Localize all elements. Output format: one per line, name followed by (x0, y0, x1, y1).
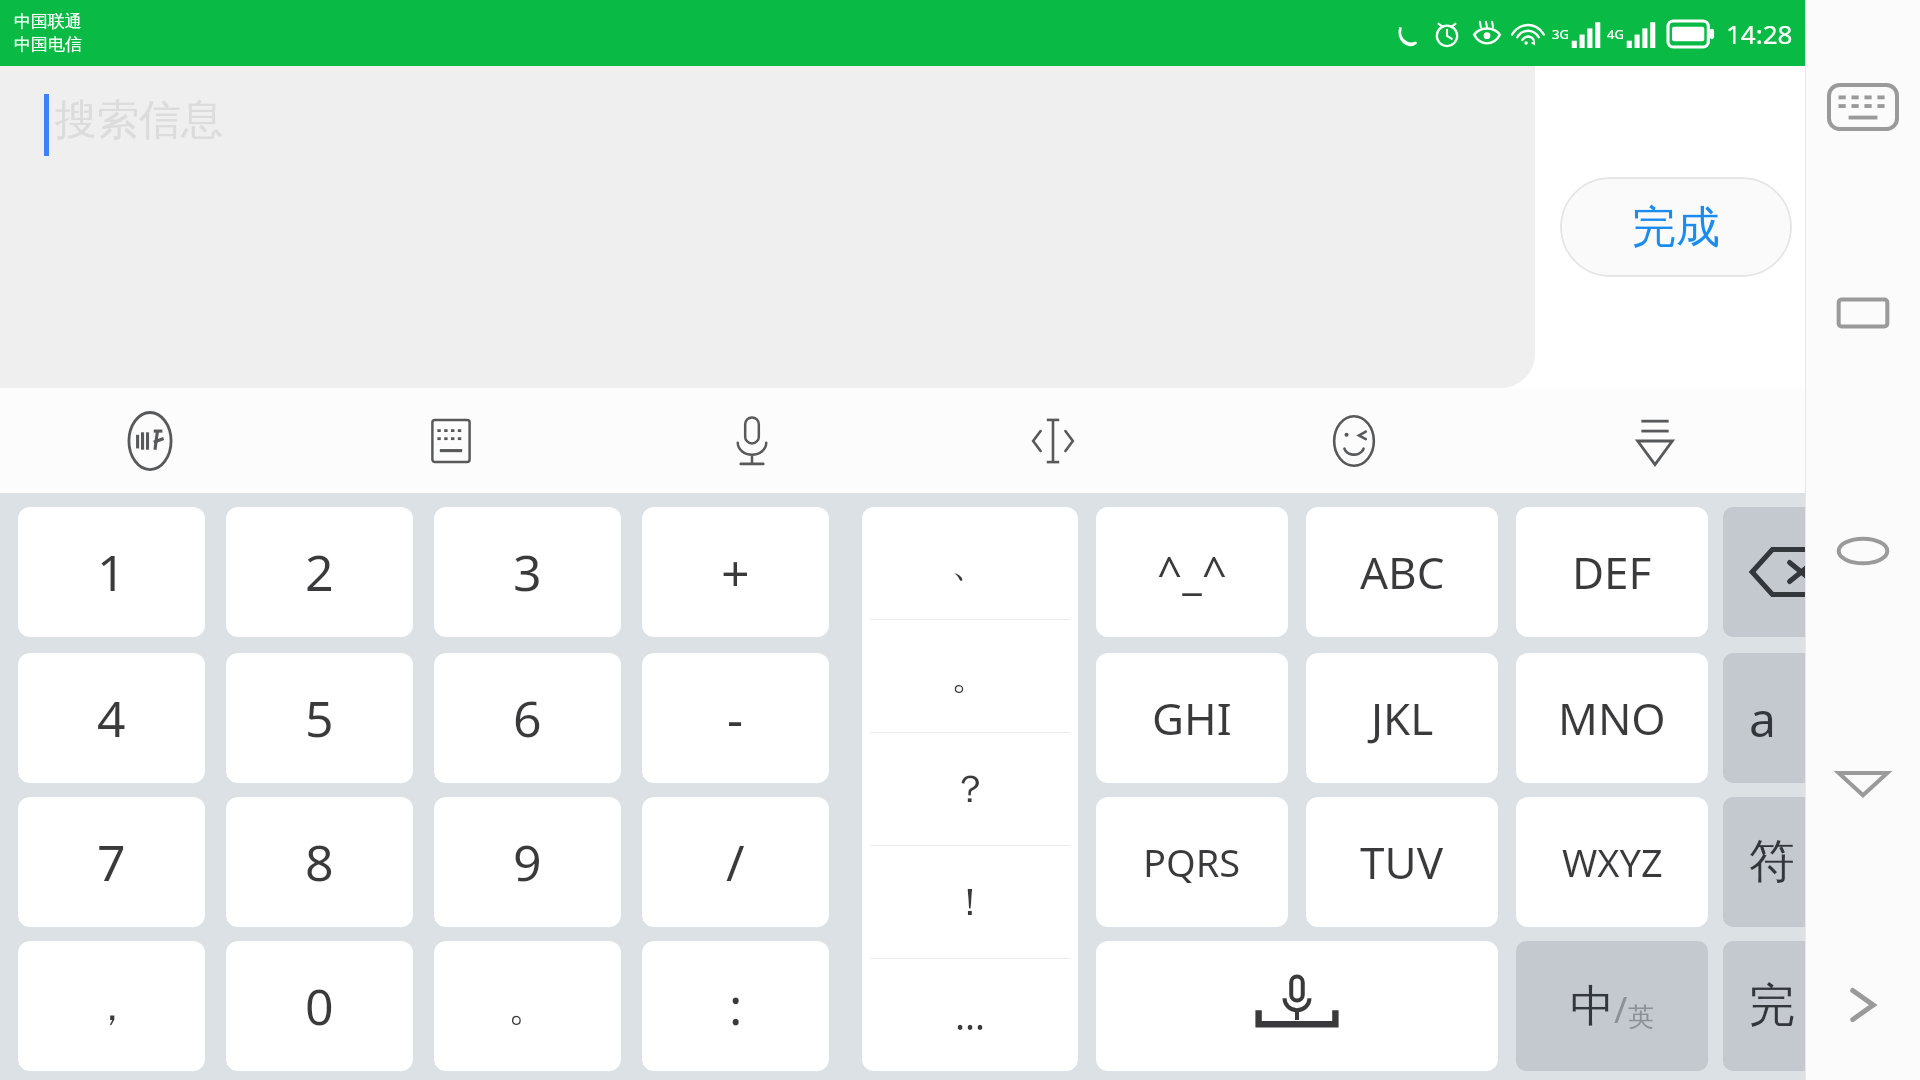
staticText: 7 (97, 828, 126, 896)
staticText: GHI (1152, 688, 1232, 748)
staticText: / (1614, 985, 1628, 1034)
staticText: + (721, 538, 750, 606)
staticText: TUV (1360, 832, 1444, 892)
staticText: 8 (305, 828, 334, 896)
staticText: 2 (305, 538, 334, 606)
button[interactable]: Symbols (1723, 797, 1915, 927)
staticText: 。 (951, 652, 989, 700)
staticText: 中国电信 (14, 34, 82, 55)
button[interactable]: Keyboard (1805, 62, 1920, 152)
button[interactable]: WXYZ (1516, 797, 1708, 927)
button[interactable]: 0 (226, 941, 413, 1071)
staticText: 0 (305, 972, 334, 1040)
button[interactable]: 搜索信息 (0, 66, 1535, 388)
staticText: JKL (1371, 688, 1434, 748)
staticText: 1 (97, 538, 126, 606)
button[interactable]: 4 (18, 653, 205, 783)
staticText: ABC (1360, 542, 1445, 602)
button[interactable]: Emoji (1203, 388, 1504, 493)
staticText: 完成 (1632, 200, 1720, 255)
staticText: WXYZ (1562, 836, 1663, 888)
staticText: 中国联通 (14, 11, 82, 32)
button[interactable]: Done (1723, 941, 1915, 1071)
staticText: / (726, 828, 745, 896)
button[interactable]: 6 (434, 653, 621, 783)
staticText: a (1749, 686, 1776, 751)
staticText: ？ (951, 765, 989, 813)
button[interactable]: ^_^ (1096, 507, 1288, 637)
button[interactable]: MNO (1516, 653, 1708, 783)
staticText: 英 (1628, 1001, 1654, 1034)
staticText: 完 (1749, 977, 1795, 1035)
staticText: 搜索信息 (55, 94, 223, 147)
button[interactable]: - (642, 653, 829, 783)
staticText: 4G (1607, 25, 1624, 43)
staticText: 符 (1749, 833, 1795, 891)
button[interactable]: 。 (434, 941, 621, 1071)
button[interactable]: Back (1805, 740, 1920, 826)
button[interactable]: ？ (862, 733, 1078, 845)
staticText: ！ (951, 878, 989, 926)
staticText: 6 (513, 684, 542, 752)
button[interactable]: 完成 (1560, 177, 1792, 277)
button[interactable]: Voice input (601, 388, 902, 493)
button[interactable]: 8 (226, 797, 413, 927)
button[interactable]: Home (1805, 508, 1920, 594)
staticText: … (955, 989, 986, 1041)
button[interactable]: + (642, 507, 829, 637)
button[interactable]: TUV (1306, 797, 1498, 927)
button[interactable]: DEF (1516, 507, 1708, 637)
button[interactable]: 7 (18, 797, 205, 927)
staticText: 4 (97, 684, 126, 752)
button[interactable]: 5 (226, 653, 413, 783)
button[interactable]: 中 (1516, 941, 1708, 1071)
button[interactable]: JKL (1306, 653, 1498, 783)
staticText: ^_^ (1157, 542, 1227, 602)
button[interactable]: 3 (434, 507, 621, 637)
button[interactable]: 9 (434, 797, 621, 927)
button[interactable]: / (642, 797, 829, 927)
button[interactable]: PQRS (1096, 797, 1288, 927)
staticText: ， (92, 981, 132, 1031)
button[interactable]: Backspace (1723, 507, 1915, 637)
button[interactable]: Hide keyboard (1504, 388, 1805, 493)
button[interactable]: 、 (862, 507, 1078, 619)
button[interactable]: … (862, 959, 1078, 1071)
button[interactable]: Switch to letters (1723, 653, 1915, 783)
button[interactable]: 1 (18, 507, 205, 637)
button[interactable]: Input method (0, 388, 300, 493)
staticText: 中 (1570, 979, 1614, 1034)
button[interactable]: 2 (226, 507, 413, 637)
button[interactable]: Keyboard layout (300, 388, 601, 493)
staticText: 3 (513, 538, 542, 606)
button[interactable]: Space (1096, 941, 1498, 1071)
staticText: 5 (305, 684, 334, 752)
staticText: : (729, 972, 743, 1040)
staticText: 3G (1552, 25, 1569, 43)
staticText: 9 (513, 828, 542, 896)
button[interactable]: Recents (1805, 270, 1920, 356)
button[interactable]: ！ (862, 846, 1078, 958)
staticText: 。 (508, 981, 548, 1031)
button[interactable]: 。 (862, 620, 1078, 732)
button[interactable]: Cursor move (902, 388, 1203, 493)
staticText: PQRS (1143, 836, 1241, 888)
button[interactable]: GHI (1096, 653, 1288, 783)
button[interactable]: ， (18, 941, 205, 1071)
button[interactable]: Expand (1805, 962, 1920, 1048)
button[interactable]: : (642, 941, 829, 1071)
button[interactable]: ABC (1306, 507, 1498, 637)
staticText: 14:28 (1726, 16, 1793, 51)
staticText: DEF (1572, 542, 1652, 602)
staticText: 、 (951, 539, 989, 587)
staticText: MNO (1558, 688, 1666, 748)
staticText: - (727, 684, 744, 752)
